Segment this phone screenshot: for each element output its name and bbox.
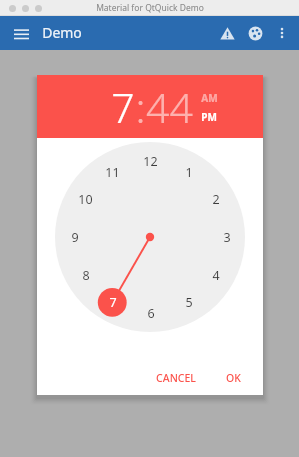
button[interactable]: 3 (212, 223, 241, 252)
staticText: 7 (109, 294, 117, 311)
button[interactable]: 7 (111, 79, 135, 135)
staticText: 7 (111, 79, 135, 135)
button[interactable]: 4 (201, 261, 230, 290)
staticText: 11 (105, 164, 120, 181)
staticText: OK (226, 371, 241, 385)
button[interactable]: 44 (146, 79, 193, 135)
staticText: 5 (185, 294, 193, 311)
button[interactable]: 9 (60, 223, 89, 252)
button[interactable]: 7 (98, 288, 127, 317)
button[interactable]: 1 (174, 158, 203, 187)
button[interactable]: 11 (98, 158, 127, 187)
button[interactable]: PM (201, 110, 217, 124)
staticText: 3 (223, 229, 231, 246)
button[interactable]: Theme palette (241, 19, 269, 47)
button[interactable]: 12 (136, 147, 165, 176)
staticText: PM (201, 110, 217, 124)
button[interactable]: More options (269, 20, 295, 46)
button[interactable]: CANCEL (148, 366, 204, 390)
button[interactable]: 8 (71, 261, 100, 290)
staticText: 4 (212, 267, 220, 284)
staticText: CANCEL (156, 371, 196, 385)
staticText: 8 (82, 267, 90, 284)
staticText: : (135, 79, 146, 135)
button[interactable]: OK (218, 366, 249, 390)
staticText: 1 (185, 164, 193, 181)
staticText: Demo (42, 23, 82, 42)
staticText: AM (201, 91, 218, 105)
staticText: 10 (78, 191, 93, 208)
staticText: 2 (212, 191, 220, 208)
staticText: 6 (147, 305, 155, 322)
button[interactable]: 10 (71, 185, 100, 214)
button[interactable]: AM (201, 91, 218, 105)
staticText: Material for QtQuick Demo (96, 2, 204, 14)
staticText: 9 (71, 229, 79, 246)
button[interactable]: 2 (201, 185, 230, 214)
staticText: 44 (146, 79, 193, 135)
button[interactable]: 5 (174, 288, 203, 317)
button[interactable]: Warnings (213, 19, 241, 47)
button[interactable]: 6 (136, 299, 165, 328)
staticText: 12 (143, 153, 158, 170)
button[interactable]: Open navigation menu (8, 20, 34, 46)
